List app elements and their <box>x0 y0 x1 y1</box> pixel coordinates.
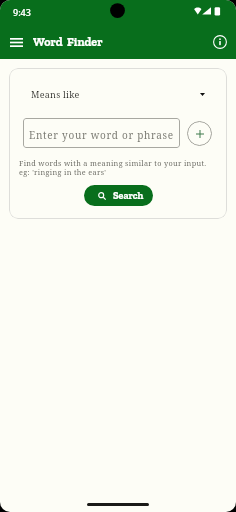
button[interactable]: About <box>210 32 230 52</box>
staticText: Means like <box>31 88 80 100</box>
staticText: Search <box>113 190 144 202</box>
button[interactable]: Add another word <box>187 121 212 146</box>
staticText: Find words with a meaning similar to you… <box>19 158 207 178</box>
staticText: Word <box>33 35 63 49</box>
staticText: Enter your word or phrase <box>29 128 174 142</box>
staticText: Finder <box>67 35 103 49</box>
button[interactable]: Enter your word or phrase <box>23 118 180 148</box>
button[interactable]: Open navigation menu <box>5 31 27 53</box>
button[interactable]: Search <box>84 185 153 206</box>
staticText: 9:43 <box>13 6 31 18</box>
button[interactable]: Means like <box>9 68 227 118</box>
